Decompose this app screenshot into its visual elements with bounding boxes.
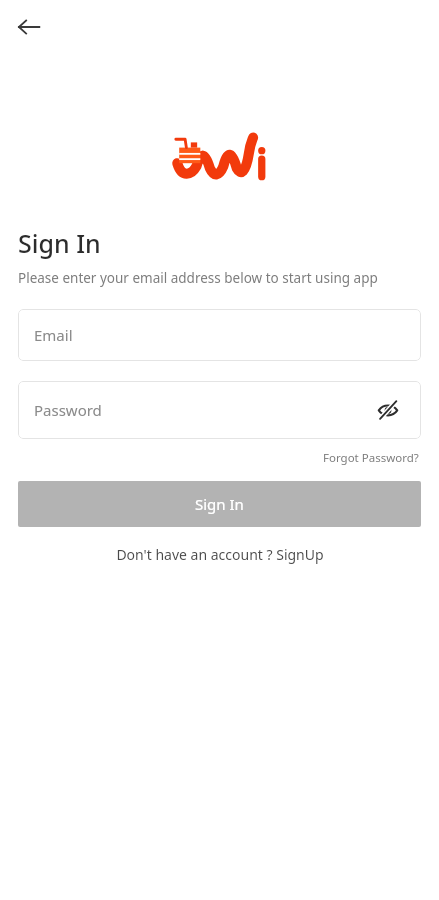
button[interactable]: Sign In: [18, 481, 421, 527]
staticText: Please enter your email address below to…: [18, 269, 378, 287]
staticText: Password: [34, 400, 102, 420]
button[interactable]: Forgot Password?: [321, 448, 421, 468]
button[interactable]: Email: [18, 309, 421, 361]
button[interactable]: Don't have an account ? SignUp: [112, 542, 328, 567]
staticText: Don't have an account ? SignUp: [116, 545, 324, 564]
button[interactable]: Password: [18, 381, 421, 439]
staticText: Email: [34, 325, 73, 345]
staticText: Sign In: [195, 494, 244, 514]
staticText: Sign In: [18, 226, 101, 260]
staticText: Forgot Password?: [323, 450, 419, 466]
button[interactable]: Show password: [371, 393, 405, 427]
button[interactable]: Back: [8, 6, 50, 48]
